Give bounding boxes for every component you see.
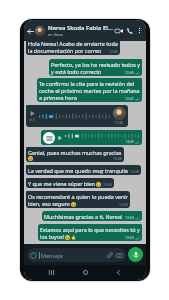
button[interactable]: Muchísimas gracias a ti, Nerea! (42, 211, 142, 221)
button[interactable]: La verdad que me quedo muy tranquila (26, 165, 141, 175)
button[interactable]: Perfecto, ya los he revisado todos y (49, 59, 142, 76)
button[interactable]: 13:45 (41, 130, 142, 145)
button[interactable]: Back (26, 27, 34, 35)
staticText: 12:46 (125, 70, 134, 75)
button[interactable]: Te confirmo la cita para la revisión del (37, 78, 142, 102)
staticText: los tuyos! (40, 233, 64, 240)
button[interactable]: Buenos días Nerea, ya tengo aquí (26, 41, 120, 55)
staticText: Genial, pues muchas muchas gracias (28, 149, 122, 156)
staticText: 13:50 (125, 235, 134, 240)
staticText: bien, eso seguro (28, 200, 70, 207)
staticText: x1.5 (29, 118, 36, 122)
button[interactable]: More options (135, 26, 144, 35)
button[interactable]: Camera (116, 252, 123, 259)
button[interactable]: Os recomendaré a quien lo pueda venir (26, 191, 130, 208)
staticText: a primera hora (39, 94, 77, 101)
staticText: Os recomendaré a quien lo pueda venir (28, 193, 128, 200)
staticText: Perfecto, ya los he revisado todos y (51, 61, 140, 68)
button[interactable]: Home (79, 266, 92, 279)
button[interactable]: Record voice message (128, 247, 143, 262)
staticText: Muchísimas gracias a ti, Nerea! (44, 213, 123, 220)
staticText: coche el próximo martes por la mañana (39, 87, 140, 94)
button[interactable]: Attach (106, 252, 113, 259)
staticText: 13:48 (130, 169, 139, 174)
staticText: La verdad que me quedo muy tranquila (28, 167, 128, 174)
staticText: Estamos aquí para lo que necesites tú y (40, 226, 140, 233)
button[interactable]: Genial, pues muchas muchas gracias (26, 147, 124, 162)
button[interactable]: Y que me viene súper bien (26, 178, 114, 188)
button[interactable]: x1.5 (26, 105, 128, 127)
staticText: en línea (48, 32, 63, 37)
staticText: la documentación por correo (28, 47, 102, 54)
button[interactable]: Recent apps (45, 266, 58, 279)
staticText: 13:49 (103, 182, 112, 187)
staticText: 12:45 (109, 49, 118, 54)
button[interactable]: Mensaje (27, 248, 126, 262)
staticText: 12:47 (125, 96, 134, 101)
staticText: Te confirmo la cita para la revisión del (39, 80, 135, 87)
staticText: y está todo correcto (51, 68, 102, 75)
staticText: Nerea Skoda Fabia El... (48, 24, 113, 32)
staticText: 13:48 (113, 156, 122, 161)
staticText: 13:49 (119, 202, 128, 207)
button[interactable]: Back (112, 266, 125, 279)
staticText: 13:45 (126, 140, 134, 144)
staticText: 13:50 (125, 215, 134, 220)
button[interactable]: Voice call (124, 25, 135, 36)
button[interactable]: Estamos aquí para lo que necesites tú y (38, 224, 142, 241)
staticText: Y que me viene súper bien (28, 180, 95, 187)
staticText: 13:44 (115, 121, 124, 125)
staticText: Mensaje (41, 252, 63, 259)
staticText: Hola Nerea! Acabo de enviarte toda (28, 41, 118, 47)
button[interactable]: Video call (113, 25, 124, 36)
